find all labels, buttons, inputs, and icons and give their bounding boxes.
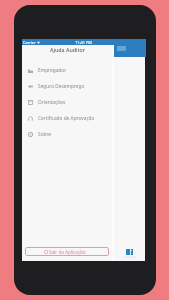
staticText: Ajuda Auditor bbox=[22, 46, 113, 53]
button[interactable]: Sair da Aplicação bbox=[25, 247, 109, 256]
button[interactable]: Empregador bbox=[22, 62, 113, 78]
staticText: Seguro Desemprego bbox=[38, 83, 85, 90]
staticText: 11:41 PM bbox=[75, 40, 92, 45]
staticText: Carrier bbox=[23, 40, 36, 45]
button[interactable]: Certificado de Aprovação bbox=[22, 110, 113, 126]
staticText: Sobre bbox=[38, 131, 52, 138]
button[interactable]: Menu bbox=[114, 39, 146, 57]
staticText: Certificado de Aprovação bbox=[38, 115, 95, 122]
staticText: Sair da Aplicação bbox=[49, 249, 86, 255]
button[interactable]: App badge bbox=[126, 249, 133, 255]
staticText: Orientações bbox=[38, 99, 66, 106]
staticText: Empregador bbox=[38, 67, 67, 74]
button[interactable]: Sobre bbox=[22, 126, 113, 142]
button[interactable]: Seguro Desemprego bbox=[22, 78, 113, 94]
button[interactable]: Orientações bbox=[22, 94, 113, 110]
